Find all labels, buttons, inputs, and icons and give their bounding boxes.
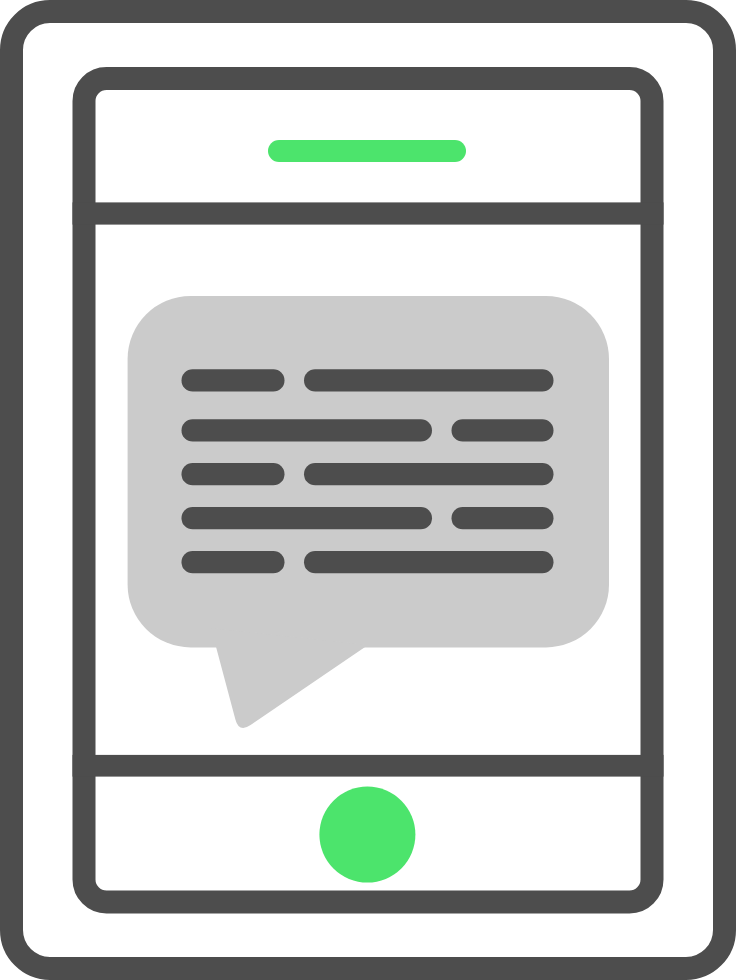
button[interactable]: Message: [128, 296, 609, 647]
button[interactable]: Home: [319, 787, 415, 883]
button[interactable]: Title: [268, 140, 466, 162]
